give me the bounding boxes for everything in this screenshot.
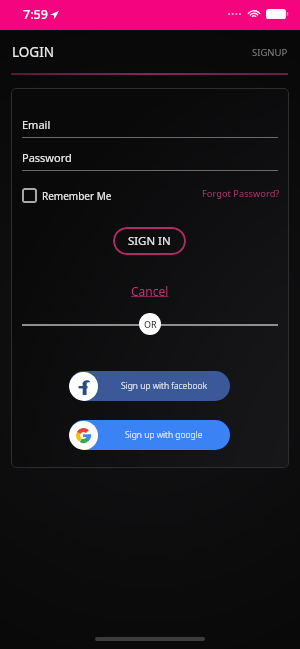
button[interactable]: Cancel bbox=[128, 280, 172, 302]
button[interactable]: Email bbox=[22, 117, 278, 138]
staticText: Email bbox=[22, 117, 51, 132]
staticText: Password bbox=[22, 150, 72, 165]
staticText: 7:59 bbox=[23, 6, 48, 23]
staticText: Sign up with google bbox=[125, 429, 203, 441]
button[interactable]: Forgot Password? bbox=[178, 182, 280, 204]
button[interactable]: SIGN IN bbox=[113, 227, 186, 255]
button[interactable]: Password bbox=[22, 150, 278, 171]
button[interactable]: Remember Me bbox=[22, 188, 112, 203]
staticText: Remember Me bbox=[42, 189, 112, 203]
button[interactable]: SIGNUP bbox=[244, 38, 300, 67]
button[interactable]: Sign up with facebook bbox=[69, 371, 230, 401]
button[interactable]: Sign up with google bbox=[69, 420, 230, 450]
staticText: Sign up with facebook bbox=[121, 380, 207, 392]
staticText: Forgot Password? bbox=[202, 187, 280, 200]
staticText: OR bbox=[144, 318, 157, 330]
staticText: SIGN IN bbox=[128, 233, 171, 249]
button[interactable]: LOGIN bbox=[0, 35, 63, 69]
